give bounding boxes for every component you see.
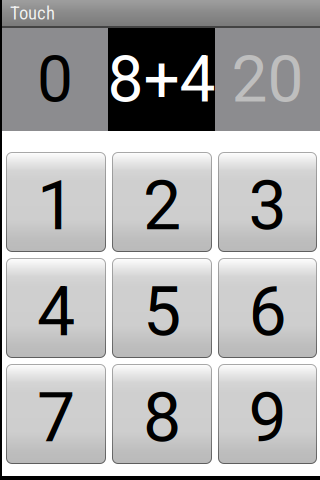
staticText: 6 bbox=[248, 272, 286, 352]
button[interactable]: 4 bbox=[6, 258, 106, 358]
button[interactable]: 3 bbox=[218, 152, 317, 252]
staticText: 1 bbox=[37, 166, 75, 246]
staticText: 20 bbox=[231, 42, 303, 117]
staticText: 8+4 bbox=[107, 42, 215, 117]
staticText: 2 bbox=[143, 166, 181, 246]
staticText: 0 bbox=[37, 42, 73, 117]
button[interactable]: 9 bbox=[218, 364, 317, 464]
button[interactable]: 2 bbox=[112, 152, 212, 252]
button[interactable]: 1 bbox=[6, 152, 106, 252]
staticText: 3 bbox=[248, 166, 286, 246]
button[interactable]: 6 bbox=[218, 258, 317, 358]
staticText: 4 bbox=[37, 272, 75, 352]
button[interactable]: 5 bbox=[112, 258, 212, 358]
staticText: 9 bbox=[248, 378, 286, 458]
staticText: Touch bbox=[10, 2, 55, 24]
staticText: 7 bbox=[37, 378, 75, 458]
button[interactable]: 8 bbox=[112, 364, 212, 464]
staticText: 5 bbox=[143, 272, 181, 352]
button[interactable]: 7 bbox=[6, 364, 106, 464]
staticText: 8 bbox=[143, 378, 181, 458]
